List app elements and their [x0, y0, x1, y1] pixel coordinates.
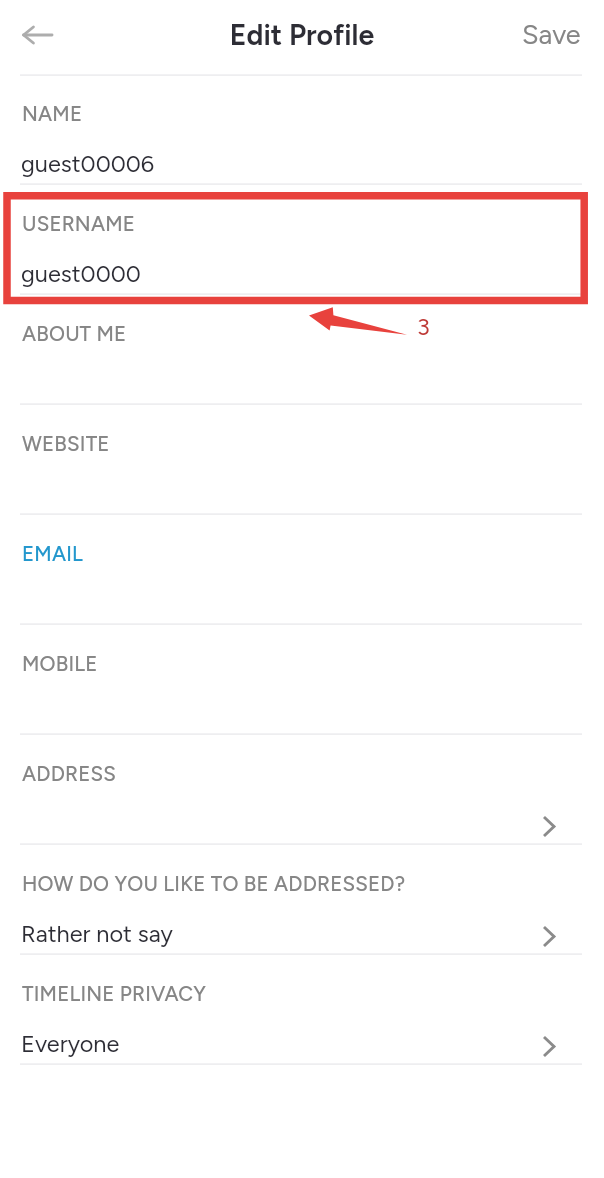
- staticText: ADDRESS: [22, 762, 116, 787]
- button[interactable]: ADDRESS: [0, 735, 604, 845]
- button[interactable]: NAME: [0, 75, 604, 185]
- staticText: guest0000: [21, 260, 141, 288]
- button[interactable]: EMAIL: [0, 515, 604, 625]
- staticText: USERNAME: [22, 212, 136, 237]
- button[interactable]: MOBILE: [0, 625, 604, 735]
- staticText: NAME: [22, 102, 83, 127]
- button[interactable]: TIMELINE PRIVACY: [0, 955, 604, 1065]
- button[interactable]: Back: [8, 6, 66, 64]
- staticText: HOW DO YOU LIKE TO BE ADDRESSED?: [22, 872, 406, 897]
- staticText: TIMELINE PRIVACY: [22, 982, 207, 1007]
- button[interactable]: HOW DO YOU LIKE TO BE ADDRESSED?: [0, 845, 604, 955]
- staticText: Edit Profile: [0, 18, 604, 52]
- button[interactable]: WEBSITE: [0, 405, 604, 515]
- button[interactable]: USERNAME: [0, 185, 604, 295]
- staticText: WEBSITE: [22, 432, 110, 457]
- staticText: Rather not say: [21, 920, 173, 948]
- staticText: guest00006: [21, 150, 155, 178]
- staticText: EMAIL: [22, 542, 84, 567]
- staticText: Save: [522, 18, 581, 50]
- staticText: 3: [417, 313, 430, 341]
- staticText: ABOUT ME: [22, 322, 127, 347]
- button[interactable]: ABOUT ME: [0, 295, 604, 405]
- button[interactable]: Save: [496, 8, 604, 60]
- staticText: Everyone: [21, 1030, 120, 1058]
- staticText: MOBILE: [22, 652, 98, 677]
